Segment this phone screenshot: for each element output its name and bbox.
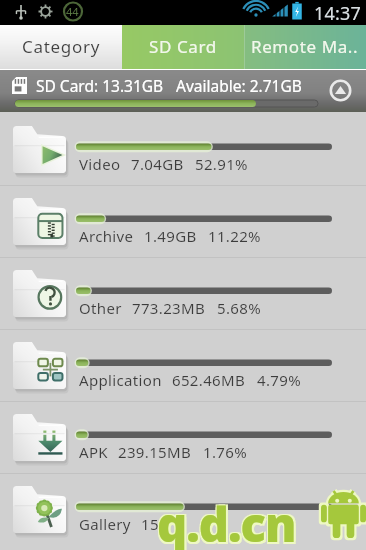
- staticText: Category: [22, 35, 101, 58]
- staticText: Application: [79, 370, 162, 390]
- button[interactable]: Other: [0, 258, 366, 329]
- button[interactable]: Gallery: [0, 474, 366, 545]
- button[interactable]: Collapse: [329, 79, 352, 102]
- staticText: Available: 2.71GB: [176, 75, 302, 96]
- staticText: q.d.cn: [157, 492, 296, 550]
- staticText: Remote Ma..: [251, 35, 359, 58]
- staticText: 44: [66, 4, 79, 19]
- button[interactable]: SD Card: [122, 25, 244, 70]
- staticText: 773.23MB: [132, 298, 206, 318]
- button[interactable]: Application: [0, 330, 366, 401]
- button[interactable]: APK: [0, 402, 366, 473]
- button[interactable]: Video: [0, 114, 366, 185]
- staticText: SD Card: 13.31GB: [36, 75, 164, 96]
- staticText: Video: [79, 154, 121, 174]
- staticText: q.d.cn: [156, 491, 295, 550]
- staticText: 4.79%: [257, 370, 301, 390]
- staticText: q.d.cn: [159, 491, 298, 550]
- staticText: 15: [141, 514, 159, 534]
- staticText: 652.46MB: [172, 370, 246, 390]
- staticText: SD Card: [149, 35, 217, 58]
- staticText: 1.49GB: [144, 226, 197, 246]
- staticText: APK: [79, 442, 108, 462]
- staticText: Other: [79, 298, 122, 318]
- staticText: 5.68%: [217, 298, 261, 318]
- staticText: 1.76%: [203, 442, 247, 462]
- button[interactable]: Archive: [0, 186, 366, 257]
- staticText: 239.15MB: [118, 442, 192, 462]
- staticText: 14:37: [314, 1, 362, 26]
- staticText: 52.91%: [195, 154, 248, 174]
- staticText: q.d.cn: [157, 494, 296, 550]
- staticText: q.d.cn: [156, 494, 295, 550]
- button[interactable]: Remote Ma..: [244, 25, 366, 70]
- button[interactable]: Category: [0, 25, 122, 70]
- staticText: Gallery: [79, 514, 131, 534]
- staticText: 7.04GB: [131, 154, 184, 174]
- staticText: Archive: [79, 226, 134, 246]
- staticText: q.d.cn: [159, 494, 298, 550]
- staticText: 11.22%: [208, 226, 261, 246]
